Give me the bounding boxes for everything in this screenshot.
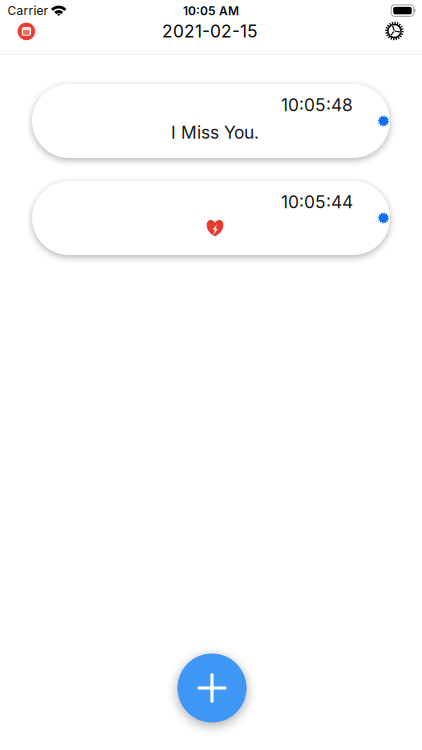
button[interactable]: Calendar xyxy=(7,12,45,50)
button[interactable]: 10:05:44 xyxy=(32,181,390,255)
button[interactable]: Settings xyxy=(375,12,413,50)
button[interactable]: Add xyxy=(173,649,251,727)
staticText: 10:05:48 xyxy=(281,94,353,115)
staticText: Carrier xyxy=(7,3,48,18)
button[interactable]: 10:05:48 xyxy=(32,84,390,158)
staticText: 10:05:44 xyxy=(281,191,353,212)
staticText: 10:05 AM xyxy=(183,3,239,18)
staticText: I Miss You. xyxy=(171,122,259,143)
staticText: 2021-02-15 xyxy=(162,21,258,42)
